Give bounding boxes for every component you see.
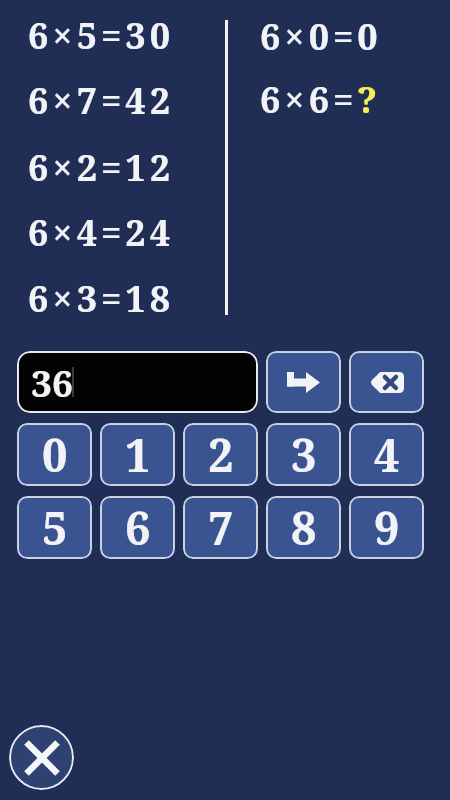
button[interactable] — [266, 351, 341, 413]
button[interactable] — [9, 725, 74, 790]
button[interactable]: 4 — [349, 423, 424, 486]
staticText: 1 — [125, 424, 151, 485]
button[interactable]: 0 — [17, 423, 92, 486]
button[interactable]: 5 — [17, 496, 92, 559]
button[interactable] — [349, 351, 424, 413]
staticText: 8 — [291, 497, 317, 558]
button[interactable]: 2 — [183, 423, 258, 486]
button[interactable]: 6 — [100, 496, 175, 559]
staticText: 7 — [208, 497, 234, 558]
staticText: 5 — [42, 497, 68, 558]
staticText: 6×0=0 — [260, 12, 382, 61]
staticText: 3 — [291, 424, 317, 485]
staticText: 0 — [42, 424, 68, 485]
button[interactable]: 9 — [349, 496, 424, 559]
staticText: 6×7=42 — [28, 76, 175, 125]
button[interactable]: 7 — [183, 496, 258, 559]
staticText: 6×2=12 — [28, 143, 175, 192]
staticText: 2 — [208, 424, 234, 485]
button[interactable]: 3 — [266, 423, 341, 486]
staticText: 36 — [31, 357, 73, 407]
staticText: 6 — [125, 497, 151, 558]
staticText: 4 — [374, 424, 400, 485]
staticText: 6×3=18 — [28, 274, 175, 323]
staticText: 6×5=30 — [28, 11, 175, 60]
staticText: 6×4=24 — [28, 208, 175, 257]
staticText: 6×6=? — [260, 75, 382, 124]
staticText: 9 — [374, 497, 400, 558]
button[interactable]: 1 — [100, 423, 175, 486]
button[interactable]: 36 — [17, 351, 258, 413]
button[interactable]: 8 — [266, 496, 341, 559]
